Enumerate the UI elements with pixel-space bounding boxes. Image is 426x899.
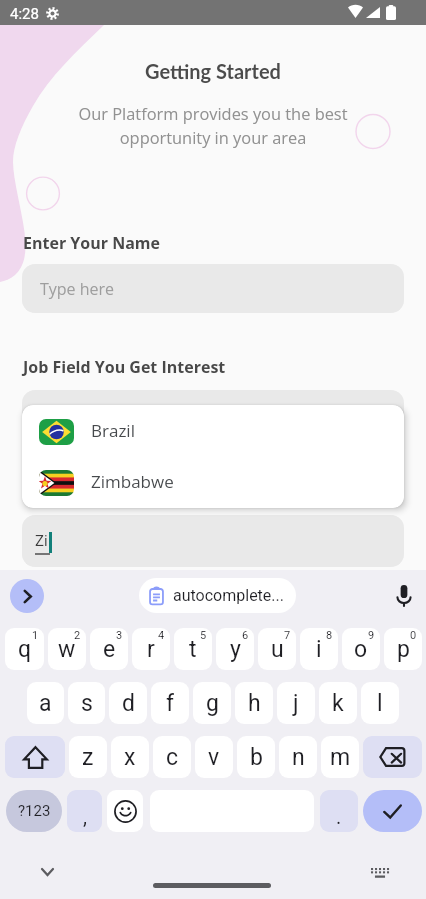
button[interactable]: r	[132, 628, 170, 670]
button[interactable]: Hide keyboard	[33, 858, 61, 886]
staticText: Zi	[35, 532, 48, 550]
staticText: Getting Started	[0, 59, 426, 83]
button[interactable]: t	[174, 628, 212, 670]
button[interactable]: Zi	[22, 515, 404, 567]
staticText: k	[332, 690, 344, 717]
staticText: Zimbabwe	[91, 470, 174, 493]
staticText: 4	[158, 629, 165, 642]
staticText: m	[330, 744, 351, 771]
staticText: Type here	[40, 278, 115, 300]
staticText: g	[206, 690, 219, 717]
staticText: z	[82, 744, 94, 771]
button[interactable]: c	[153, 736, 191, 778]
staticText: 2	[74, 629, 81, 642]
button[interactable]: More suggestions	[10, 579, 44, 613]
button[interactable]: Backspace	[363, 736, 422, 778]
button[interactable]: .	[320, 790, 358, 832]
staticText: ,	[83, 805, 87, 828]
button[interactable]: v	[195, 736, 233, 778]
button[interactable]: h	[235, 682, 273, 724]
staticText: f	[166, 690, 174, 717]
staticText: 4:28	[10, 5, 39, 23]
button[interactable]: y	[216, 628, 254, 670]
button[interactable]: m	[321, 736, 359, 778]
staticText: Job Field You Get Interest	[23, 356, 226, 378]
button[interactable]: Type here	[22, 264, 404, 313]
staticText: h	[248, 690, 261, 717]
staticText: p	[397, 636, 410, 663]
button[interactable]: Shift	[5, 736, 65, 778]
staticText: .	[336, 805, 342, 828]
button[interactable]: l	[361, 682, 399, 724]
staticText: q	[18, 636, 32, 663]
button[interactable]: e	[90, 628, 128, 670]
staticText: v	[208, 744, 220, 771]
button[interactable]: q	[5, 628, 44, 670]
staticText: 7	[284, 629, 291, 642]
button[interactable]: j	[277, 682, 315, 724]
staticText: Brazil	[91, 419, 135, 442]
staticText: 8	[326, 629, 333, 642]
button[interactable]: Enter	[363, 790, 422, 832]
staticText: 5	[200, 629, 207, 642]
staticText: b	[250, 744, 263, 771]
staticText: e	[103, 636, 116, 663]
staticText: u	[271, 636, 284, 663]
button[interactable]: z	[69, 736, 107, 778]
button[interactable]: s	[68, 682, 105, 724]
button[interactable]: autocomplete...	[139, 578, 296, 613]
staticText: w	[58, 636, 76, 663]
staticText: j	[293, 690, 299, 717]
button[interactable]: i	[300, 628, 338, 670]
button[interactable]: f	[151, 682, 189, 724]
staticText: 3	[116, 629, 123, 642]
button[interactable]: d	[109, 682, 147, 724]
staticText: 6	[242, 629, 249, 642]
staticText: 9	[368, 629, 375, 642]
button[interactable]: ,	[67, 790, 102, 832]
button[interactable]	[22, 390, 404, 439]
button[interactable]: x	[111, 736, 149, 778]
button[interactable]: b	[237, 736, 275, 778]
staticText: c	[166, 744, 179, 771]
button[interactable]: n	[279, 736, 317, 778]
staticText: Our Platform provides you the best oppor…	[0, 102, 426, 149]
staticText: l	[377, 690, 383, 717]
staticText: n	[292, 744, 305, 771]
staticText: d	[122, 690, 135, 717]
staticText: 1	[32, 629, 39, 642]
button[interactable]: p	[384, 628, 422, 670]
button[interactable]: g	[193, 682, 231, 724]
staticText: autocomplete...	[173, 586, 284, 605]
staticText: y	[230, 636, 241, 663]
staticText: t	[189, 636, 197, 663]
button[interactable]: ?123	[6, 790, 62, 832]
button[interactable]: k	[319, 682, 357, 724]
staticText: i	[316, 636, 322, 663]
staticText: o	[354, 636, 368, 663]
staticText: a	[39, 690, 52, 717]
button[interactable]: Brazil	[22, 405, 404, 456]
staticText: r	[147, 636, 155, 663]
button[interactable]: Voice input	[389, 579, 419, 611]
staticText: Enter Your Name	[23, 232, 160, 254]
button[interactable]: Zimbabwe	[22, 456, 404, 507]
button[interactable]: o	[342, 628, 380, 670]
staticText: x	[124, 744, 136, 771]
button[interactable]: a	[27, 682, 64, 724]
button[interactable]: Emoji	[107, 790, 143, 832]
button[interactable]: w	[48, 628, 86, 670]
button[interactable]: Switch keyboard	[366, 862, 394, 884]
staticText: ?123	[18, 802, 51, 820]
button[interactable]: u	[258, 628, 296, 670]
staticText: 0	[410, 629, 417, 642]
staticText: s	[81, 690, 93, 717]
